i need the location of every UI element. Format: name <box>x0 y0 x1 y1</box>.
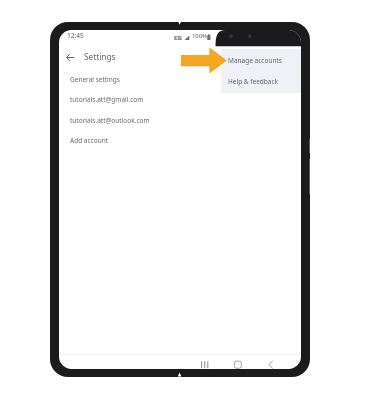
staticText: Settings <box>84 51 116 62</box>
staticText: 12:45 <box>67 31 84 40</box>
staticText: tutorials.att@gmail.com <box>70 95 144 104</box>
button[interactable]: tutorials.att@gmail.com <box>59 89 301 109</box>
button[interactable]: Recents <box>197 355 211 369</box>
button[interactable]: Back <box>264 355 278 369</box>
button[interactable]: Add account <box>59 130 301 150</box>
button[interactable]: Manage accounts <box>221 50 301 71</box>
staticText: Manage accounts <box>228 56 282 65</box>
staticText: Help & feedback <box>228 77 279 86</box>
button[interactable]: tutorials.att@outlook.com <box>59 110 301 130</box>
button[interactable]: General settings <box>59 69 301 89</box>
button[interactable]: Home <box>231 355 245 369</box>
button[interactable]: Help & feedback <box>221 71 301 92</box>
button[interactable]: Back <box>60 48 79 67</box>
staticText: 100% <box>192 32 207 40</box>
staticText: General settings <box>70 75 120 84</box>
staticText: Add account <box>70 136 109 145</box>
staticText: tutorials.att@outlook.com <box>70 116 150 125</box>
